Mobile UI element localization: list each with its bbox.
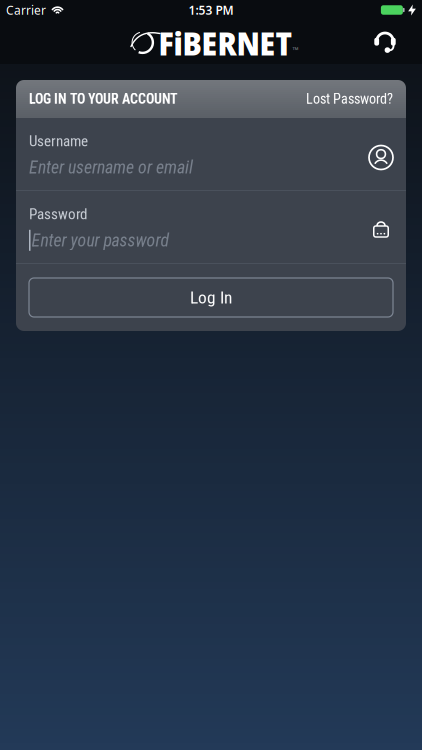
staticText: Username <box>29 132 88 150</box>
staticText: Enter your password <box>31 230 169 251</box>
staticText: Lost Password? <box>306 91 393 107</box>
staticText: LOG IN TO YOUR ACCOUNT <box>29 91 178 107</box>
staticText: Log In <box>190 287 232 308</box>
staticText: 1:53 PM <box>188 2 233 18</box>
staticText: ™ <box>292 45 298 55</box>
staticText: i <box>173 21 182 65</box>
staticText: Enter username or email <box>29 157 193 178</box>
staticText: BERNET <box>182 21 292 65</box>
staticText: Password <box>29 205 87 223</box>
staticText: Carrier <box>6 2 46 18</box>
staticText: F <box>158 21 173 65</box>
